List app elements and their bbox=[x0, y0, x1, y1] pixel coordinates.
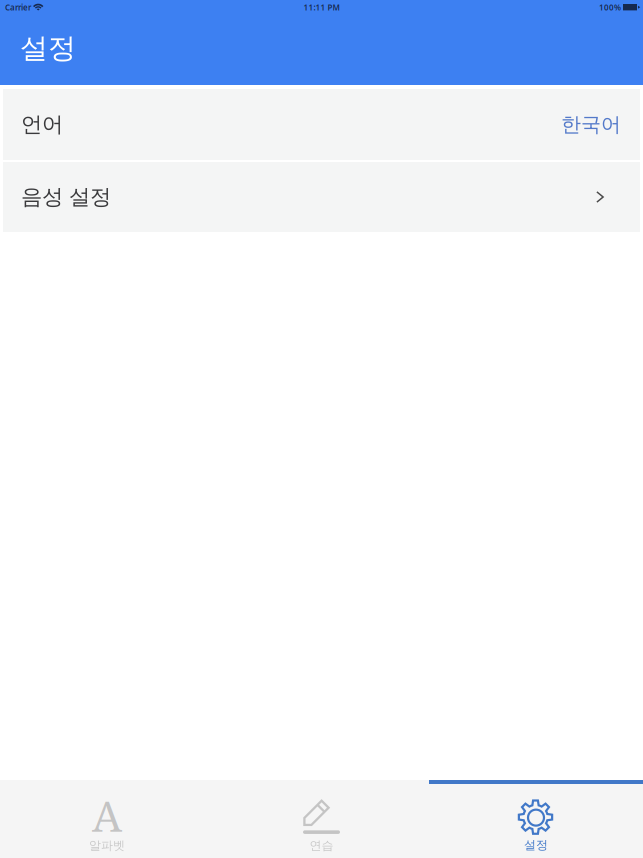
staticText: 11:11 PM bbox=[303, 2, 339, 13]
staticText: 알파벳 bbox=[89, 838, 125, 853]
staticText: Carrier bbox=[5, 2, 31, 13]
staticText: 100% bbox=[599, 2, 621, 13]
button[interactable]: A bbox=[0, 784, 214, 858]
button[interactable]: 설정 bbox=[429, 784, 643, 858]
button[interactable]: 음성 설정 bbox=[3, 162, 640, 232]
staticText: 설정 bbox=[20, 31, 76, 65]
button[interactable]: 연습 bbox=[214, 784, 429, 858]
staticText: 연습 bbox=[309, 838, 333, 853]
staticText: 음성 설정 bbox=[21, 184, 111, 210]
staticText: 한국어 bbox=[561, 112, 621, 137]
staticText: A bbox=[92, 786, 122, 844]
staticText: 언어 bbox=[21, 111, 63, 138]
staticText: 설정 bbox=[524, 838, 548, 852]
button[interactable]: 언어 bbox=[3, 89, 640, 160]
